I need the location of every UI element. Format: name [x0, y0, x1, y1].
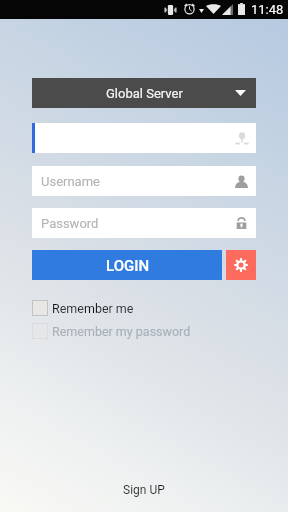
staticText: Global Server [106, 86, 183, 101]
button[interactable]: LOGIN [32, 250, 222, 280]
button[interactable]: Settings [226, 250, 256, 280]
button[interactable]: Username [32, 166, 256, 196]
staticText: Remember my password [52, 324, 191, 339]
staticText: Remember me [52, 301, 134, 316]
button[interactable]: Password [32, 208, 256, 238]
button[interactable]: Sign UP [110, 478, 178, 502]
staticText: LOGIN [106, 257, 150, 275]
staticText: Password [41, 216, 99, 231]
staticText: Username [41, 174, 100, 189]
button[interactable]: Remember me [32, 300, 134, 316]
button[interactable]: Server address [32, 123, 256, 153]
staticText: 11:48 [251, 2, 284, 17]
staticText: Sign UP [123, 483, 165, 497]
button[interactable]: Remember my password [32, 323, 191, 339]
button[interactable]: Global Server [32, 78, 256, 108]
